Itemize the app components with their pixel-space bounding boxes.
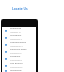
staticText: Schoenhaus 5 bbox=[10, 66, 23, 69]
button[interactable]: Commerzbank bbox=[2, 41, 36, 48]
staticText: Postbank bbox=[10, 55, 21, 58]
button[interactable]: ING Branch bbox=[2, 62, 36, 69]
staticText: ING Branch bbox=[10, 62, 23, 65]
staticText: Locate Us bbox=[12, 6, 28, 10]
staticText: Friedrichstr. 4 bbox=[10, 38, 22, 41]
button[interactable]: Volksbank bbox=[2, 34, 36, 41]
button[interactable]: Deutsche Bank bbox=[2, 48, 36, 55]
staticText: Targobank bbox=[10, 69, 22, 72]
staticText: Alexanderpl. 3 bbox=[10, 45, 23, 48]
staticText: Potsdamer 9 bbox=[10, 52, 22, 55]
staticText: Deutsche Bank bbox=[10, 48, 27, 51]
staticText: Sparkasse bbox=[10, 27, 22, 30]
button[interactable]: Locate Us bbox=[1, 5, 38, 10]
staticText: Kurfuersten 2 bbox=[10, 59, 23, 62]
staticText: Hauptstr. 12 bbox=[10, 31, 21, 34]
staticText: Commerzbank bbox=[10, 41, 27, 44]
button[interactable]: Postbank bbox=[2, 55, 36, 62]
button[interactable]: Sparkasse bbox=[2, 27, 36, 34]
staticText: Volksbank bbox=[10, 34, 22, 37]
button[interactable]: Targobank bbox=[2, 69, 36, 72]
